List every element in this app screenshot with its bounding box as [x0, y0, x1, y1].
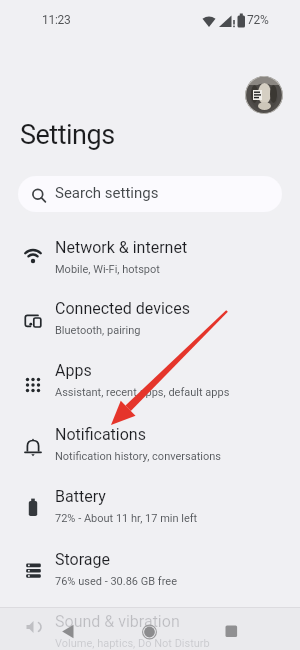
button[interactable]: Apps: [0, 351, 300, 411]
staticText: Assistant, recent apps, default apps: [55, 386, 230, 399]
staticText: Bluetooth, pairing: [55, 324, 141, 337]
button[interactable]: [44, 610, 84, 650]
staticText: Network & internet: [55, 238, 188, 257]
button[interactable]: [245, 76, 283, 114]
staticText: Volume, haptics, Do Not Disturb: [55, 637, 210, 650]
button[interactable]: Connected devices: [0, 289, 300, 349]
staticText: Apps: [55, 361, 92, 380]
staticText: Sound & vibration: [55, 612, 180, 631]
button[interactable]: Battery: [0, 477, 300, 537]
staticText: Storage: [55, 550, 110, 569]
staticText: 76% used - 30.86 GB free: [55, 575, 177, 588]
staticText: Connected devices: [55, 299, 190, 318]
staticText: 72%: [247, 13, 269, 27]
staticText: 11:23: [42, 13, 71, 27]
button[interactable]: Sound & vibration: [0, 602, 300, 650]
staticText: Search settings: [55, 184, 159, 202]
staticText: 72% - About 11 hr, 17 min left: [55, 512, 198, 525]
button[interactable]: Network & internet: [0, 228, 300, 288]
staticText: Settings: [20, 119, 115, 151]
staticText: Battery: [55, 487, 106, 506]
button[interactable]: Search settings: [18, 176, 282, 212]
button[interactable]: Notifications: [0, 415, 300, 475]
button[interactable]: Storage: [0, 540, 300, 600]
staticText: Notifications: [55, 425, 146, 444]
button[interactable]: [211, 610, 251, 650]
staticText: Mobile, Wi-Fi, hotspot: [55, 263, 160, 276]
staticText: Notification history, conversations: [55, 450, 221, 463]
button[interactable]: [130, 610, 170, 650]
